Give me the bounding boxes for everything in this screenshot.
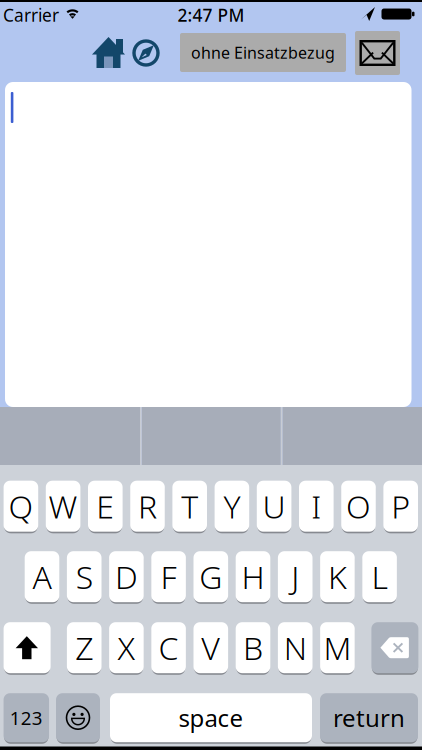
staticText: I (311, 485, 321, 527)
staticText: W (49, 485, 78, 527)
staticText: H (241, 555, 264, 598)
button[interactable] (355, 31, 400, 75)
staticText: P (391, 485, 410, 527)
button[interactable]: M (320, 622, 355, 675)
staticText: 123 (10, 705, 43, 730)
button[interactable]: A (25, 551, 59, 604)
staticText: Carrier (3, 3, 59, 26)
button[interactable] (4, 622, 51, 675)
staticText: F (161, 555, 177, 598)
button[interactable]: I (299, 481, 334, 534)
button[interactable]: L (362, 551, 397, 604)
button[interactable]: space (110, 693, 312, 744)
staticText: L (372, 555, 388, 598)
button[interactable]: H (236, 551, 270, 604)
staticText: R (138, 485, 157, 527)
staticText: Y (223, 485, 240, 527)
staticText: B (243, 626, 263, 669)
staticText: K (328, 555, 347, 598)
staticText: Q (8, 485, 33, 527)
button[interactable]: Z (67, 622, 101, 675)
button[interactable]: 123 (4, 693, 49, 744)
button[interactable]: R (130, 481, 165, 534)
staticText: Z (75, 626, 93, 669)
staticText: O (346, 485, 371, 527)
staticText: E (96, 485, 114, 527)
button[interactable] (132, 39, 160, 67)
button[interactable]: W (46, 481, 80, 534)
staticText: G (199, 555, 222, 598)
staticText: N (284, 626, 307, 669)
button[interactable]: D (109, 551, 144, 604)
button[interactable]: S (67, 551, 101, 604)
button[interactable]: T (172, 481, 207, 534)
button[interactable]: V (193, 622, 228, 675)
button[interactable]: O (341, 481, 376, 534)
staticText: V (201, 626, 220, 669)
button[interactable]: C (151, 622, 186, 675)
staticText: T (181, 485, 198, 527)
staticText: M (323, 626, 351, 669)
staticText: C (159, 626, 179, 669)
button[interactable]: ohne Einsatzbezug (180, 33, 346, 72)
button[interactable]: F (151, 551, 186, 604)
staticText: space (178, 702, 243, 734)
button[interactable] (56, 693, 100, 744)
button[interactable]: B (236, 622, 270, 675)
button[interactable]: X (109, 622, 144, 675)
button[interactable]: return (320, 693, 418, 744)
staticText: S (76, 555, 93, 598)
button[interactable]: Q (4, 481, 38, 534)
button[interactable] (371, 622, 418, 675)
staticText: J (291, 555, 299, 598)
button[interactable]: U (257, 481, 291, 534)
button[interactable]: K (320, 551, 355, 604)
button[interactable]: P (383, 481, 418, 534)
button[interactable] (92, 37, 125, 68)
staticText: U (263, 485, 286, 527)
button[interactable]: N (278, 622, 312, 675)
staticText: X (117, 626, 135, 669)
button[interactable]: G (193, 551, 228, 604)
staticText: 2:47 PM (177, 3, 244, 26)
staticText: A (32, 555, 51, 598)
staticText: return (333, 702, 405, 734)
button[interactable]: Y (215, 481, 249, 534)
staticText: ohne Einsatzbezug (191, 42, 335, 63)
button[interactable]: J (278, 551, 312, 604)
button[interactable]: E (88, 481, 123, 534)
staticText: D (115, 555, 138, 598)
